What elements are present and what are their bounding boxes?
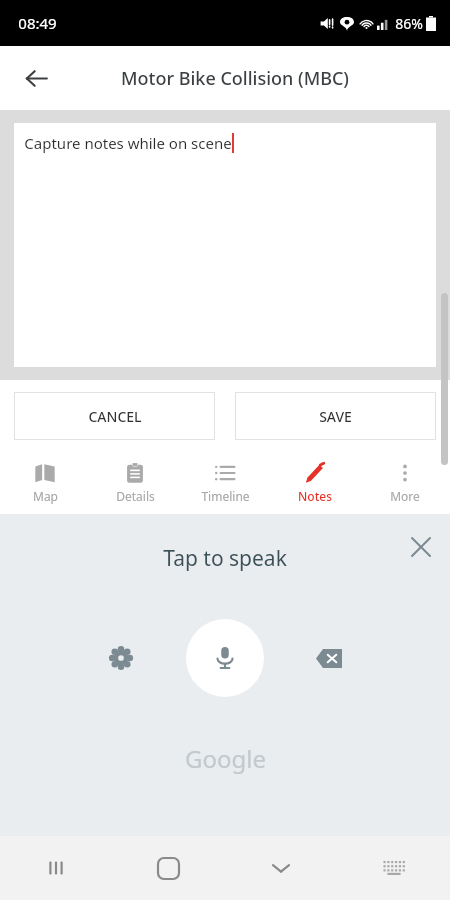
button[interactable]: Map: [0, 452, 90, 514]
staticText: Tap to speak: [163, 544, 287, 573]
button[interactable]: SAVE: [235, 392, 436, 440]
staticText: 08:49: [18, 13, 57, 33]
button[interactable]: CANCEL: [14, 392, 215, 440]
button[interactable]: Recents: [0, 836, 112, 900]
staticText: Details: [116, 488, 155, 504]
button[interactable]: Notes: [270, 452, 360, 514]
staticText: CANCEL: [88, 407, 142, 426]
staticText: More: [390, 488, 420, 504]
button[interactable]: Backspace: [304, 633, 354, 683]
button[interactable]: Hide keyboard: [224, 836, 337, 900]
button[interactable]: Settings: [96, 633, 146, 683]
button[interactable]: Timeline: [180, 452, 270, 514]
button[interactable]: Microphone: [186, 619, 264, 697]
staticText: Map: [33, 488, 58, 504]
staticText: SAVE: [319, 407, 352, 426]
staticText: Motor Bike Collision (MBC): [121, 66, 349, 91]
staticText: 86%: [395, 14, 423, 33]
staticText: Google: [185, 742, 266, 775]
button[interactable]: Capture notes while on scene: [14, 123, 436, 367]
button[interactable]: Details: [90, 452, 180, 514]
button[interactable]: Close: [400, 526, 442, 568]
button[interactable]: Back: [12, 54, 60, 102]
button[interactable]: Home: [112, 836, 224, 900]
button[interactable]: Change keyboard: [337, 836, 450, 900]
staticText: Timeline: [201, 488, 250, 504]
staticText: Notes: [298, 488, 332, 504]
staticText: Capture notes while on scene: [24, 133, 232, 153]
button[interactable]: More: [360, 452, 450, 514]
